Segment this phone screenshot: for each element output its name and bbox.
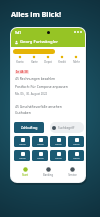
button[interactable]: Aktion — [68, 136, 84, 147]
button[interactable]: Kredit — [55, 55, 69, 64]
button[interactable]: Karte — [27, 55, 41, 64]
button[interactable]: In 44:38 — [13, 68, 84, 98]
staticText: Karte — [31, 60, 38, 64]
button[interactable]: Aktion — [32, 150, 48, 161]
staticText: Aktion — [19, 143, 26, 146]
staticText: Banking — [43, 173, 53, 177]
staticText: Aktion — [37, 143, 44, 146]
staticText: Georg Furtwängler — [20, 39, 58, 45]
button[interactable]: Aktion — [68, 150, 84, 161]
staticText: Guthaben — [15, 110, 31, 115]
button[interactable]: Zahlauftrag — [14, 122, 44, 133]
staticText: 9:41 — [15, 31, 21, 35]
button[interactable]: Aktion — [32, 136, 48, 147]
staticText: Kredit — [58, 60, 66, 64]
staticText: Depot — [44, 60, 52, 64]
button[interactable]: Aktion — [50, 150, 66, 161]
button[interactable]: Suchbegriff — [50, 122, 84, 133]
staticText: Aktion — [37, 157, 44, 160]
button[interactable]: Konto — [13, 55, 27, 64]
other: Profil — [14, 40, 19, 45]
staticText: Zahlauftrag — [21, 126, 38, 130]
button[interactable]: Aktion — [14, 150, 30, 161]
staticText: In 44:38 — [16, 70, 28, 74]
staticText: Start — [22, 173, 28, 177]
button[interactable]: 45 Geschäftsvorfälle ansehen — [13, 102, 84, 117]
staticText: 45 Rechnungen bezahlen — [15, 76, 56, 81]
staticText: Suchbegriff — [58, 126, 75, 130]
staticText: Aktion — [19, 157, 26, 160]
button[interactable]: Service — [62, 167, 82, 177]
button[interactable]: Profil — [14, 39, 58, 45]
button[interactable]: Start — [15, 167, 35, 177]
staticText: Alles im Blick! — [11, 9, 61, 19]
button[interactable]: Aktion — [14, 136, 30, 147]
staticText: Aktion — [73, 157, 80, 160]
staticText: Service — [68, 173, 77, 177]
staticText: 45 Geschäftsvorfälle ansehen — [15, 104, 62, 109]
staticText: Aktion — [55, 157, 62, 160]
staticText: Aktion — [55, 143, 62, 146]
button[interactable]: Aktion — [50, 136, 66, 147]
staticText: Mehr — [73, 60, 80, 64]
staticText: Konto — [16, 60, 24, 64]
staticText: Aktion — [73, 143, 80, 146]
button[interactable] — [13, 49, 55, 54]
staticText: Mo./Di., 30. August 2022 — [15, 92, 48, 96]
button[interactable]: Banking — [38, 167, 58, 177]
button[interactable]: Depot — [41, 55, 55, 64]
staticText: Postfach: Für Compose anpassen — [15, 84, 68, 89]
button[interactable]: Mehr — [69, 55, 83, 64]
